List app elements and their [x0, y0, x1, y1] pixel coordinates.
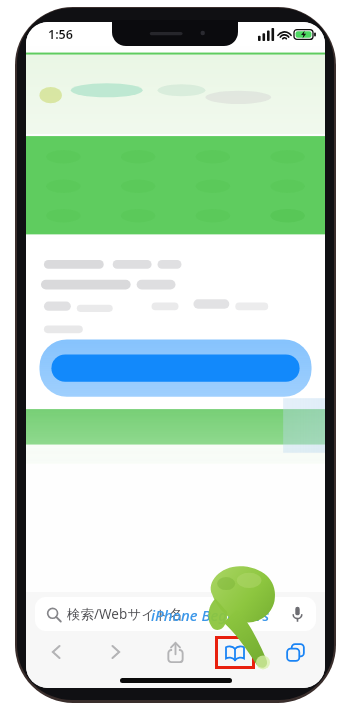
button[interactable]: Forward	[94, 636, 136, 668]
button[interactable]: Share	[154, 636, 196, 668]
staticText: 1:56	[48, 26, 73, 43]
button[interactable]: Bookmarks	[215, 636, 255, 669]
button[interactable]: 検索/Webサイト名	[35, 597, 316, 631]
staticText: 検索/Webサイト名	[67, 605, 183, 623]
staticText: iPhone Beginners	[151, 605, 270, 625]
button[interactable]: Back	[35, 636, 77, 668]
button[interactable]: Tabs	[274, 636, 316, 668]
